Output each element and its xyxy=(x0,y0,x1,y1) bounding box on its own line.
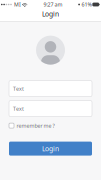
staticText: Text xyxy=(13,105,24,112)
button[interactable]: Text xyxy=(9,81,92,97)
button[interactable]: remember me ? xyxy=(9,122,92,130)
staticText: Login xyxy=(42,144,59,153)
staticText: remember me ? xyxy=(16,122,54,129)
button[interactable]: Text xyxy=(9,101,92,117)
staticText: Text xyxy=(13,85,24,92)
button[interactable]: Login xyxy=(9,142,92,156)
staticText: 61% xyxy=(81,1,91,8)
staticText: MI xyxy=(14,1,21,8)
staticText: Login xyxy=(42,10,59,18)
staticText: 9:27 am xyxy=(43,1,62,8)
